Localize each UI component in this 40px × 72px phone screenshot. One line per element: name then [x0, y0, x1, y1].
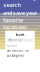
staticText: Conveniently search [3, 0, 36, 8]
staticText: Where to? [8, 38, 22, 42]
staticText: Recent [7, 44, 17, 47]
staticText: Los Angeles [7, 54, 24, 57]
staticText: Search [15, 33, 24, 37]
staticText: and save your favorite locations [3, 9, 37, 31]
staticText: San Francisco, CA [7, 49, 29, 52]
